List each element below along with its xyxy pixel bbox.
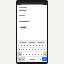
button[interactable]: Key [40, 48, 43, 51]
button[interactable]: Key [34, 52, 37, 56]
button[interactable]: Key [28, 52, 31, 56]
button[interactable]: Key [41, 44, 44, 47]
button[interactable]: Key [31, 52, 34, 56]
button[interactable]: Backspace [43, 52, 47, 56]
button[interactable]: Key [17, 44, 20, 47]
button[interactable]: Key [29, 44, 32, 47]
button[interactable]: Key [23, 44, 26, 47]
button[interactable]: Key [43, 48, 46, 51]
button[interactable]: Emoji [22, 57, 25, 61]
button[interactable]: Key [20, 44, 23, 47]
button[interactable]: Period [39, 57, 42, 61]
button[interactable]: Text field [19, 9, 28, 11]
button[interactable]: Key [22, 52, 25, 56]
button[interactable]: Shift [17, 52, 22, 56]
button[interactable]: Key [28, 48, 31, 51]
button[interactable]: Text field [19, 20, 31, 22]
button[interactable]: Send [42, 57, 47, 61]
button[interactable]: Submit [19, 26, 27, 29]
button[interactable]: Key [37, 52, 40, 56]
button[interactable]: Key [22, 48, 25, 51]
button[interactable]: Key [44, 44, 47, 47]
button[interactable]: Key [35, 44, 38, 47]
button[interactable]: Key [18, 48, 20, 51]
button[interactable]: Key [32, 44, 35, 47]
button[interactable]: Key [38, 44, 41, 47]
button[interactable]: Key [26, 44, 29, 47]
button[interactable]: Key [20, 48, 22, 51]
button[interactable]: Key [37, 48, 40, 51]
button[interactable]: Key [40, 52, 43, 56]
button[interactable]: Key [25, 48, 28, 51]
button[interactable]: Key [31, 48, 34, 51]
button[interactable]: Key [34, 48, 37, 51]
button[interactable]: Symbols [17, 57, 22, 61]
button[interactable]: Toolbar [17, 2, 47, 5]
button[interactable]: Space [25, 57, 39, 61]
button[interactable]: Key [25, 52, 28, 56]
